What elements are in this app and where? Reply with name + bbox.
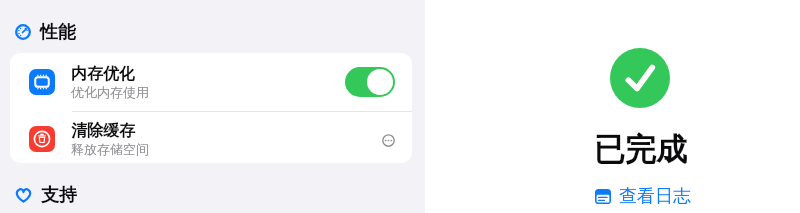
button[interactable]: 查看日志: [595, 185, 691, 208]
staticText: 支持: [41, 184, 77, 207]
staticText: 内存优化: [71, 64, 135, 84]
staticText: 性能: [40, 21, 76, 44]
button[interactable]: 清除缓存: [10, 112, 412, 163]
staticText: 清除缓存: [71, 121, 135, 141]
button[interactable]: 内存优化: [10, 53, 412, 111]
staticText: 查看日志: [619, 185, 691, 208]
staticText: 释放存储空间: [71, 141, 149, 157]
button[interactable]: [345, 67, 395, 97]
staticText: 已完成: [594, 130, 687, 169]
staticText: 优化内存使用: [71, 84, 149, 100]
